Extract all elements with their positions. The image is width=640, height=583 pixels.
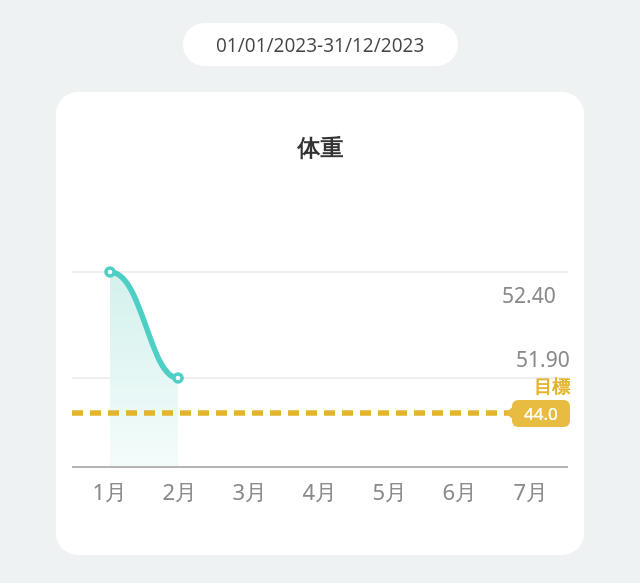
button[interactable]: Weight chart 体重 (56, 92, 584, 555)
button[interactable]: Date range 01/01/2023-31/12/2023 (183, 23, 458, 66)
